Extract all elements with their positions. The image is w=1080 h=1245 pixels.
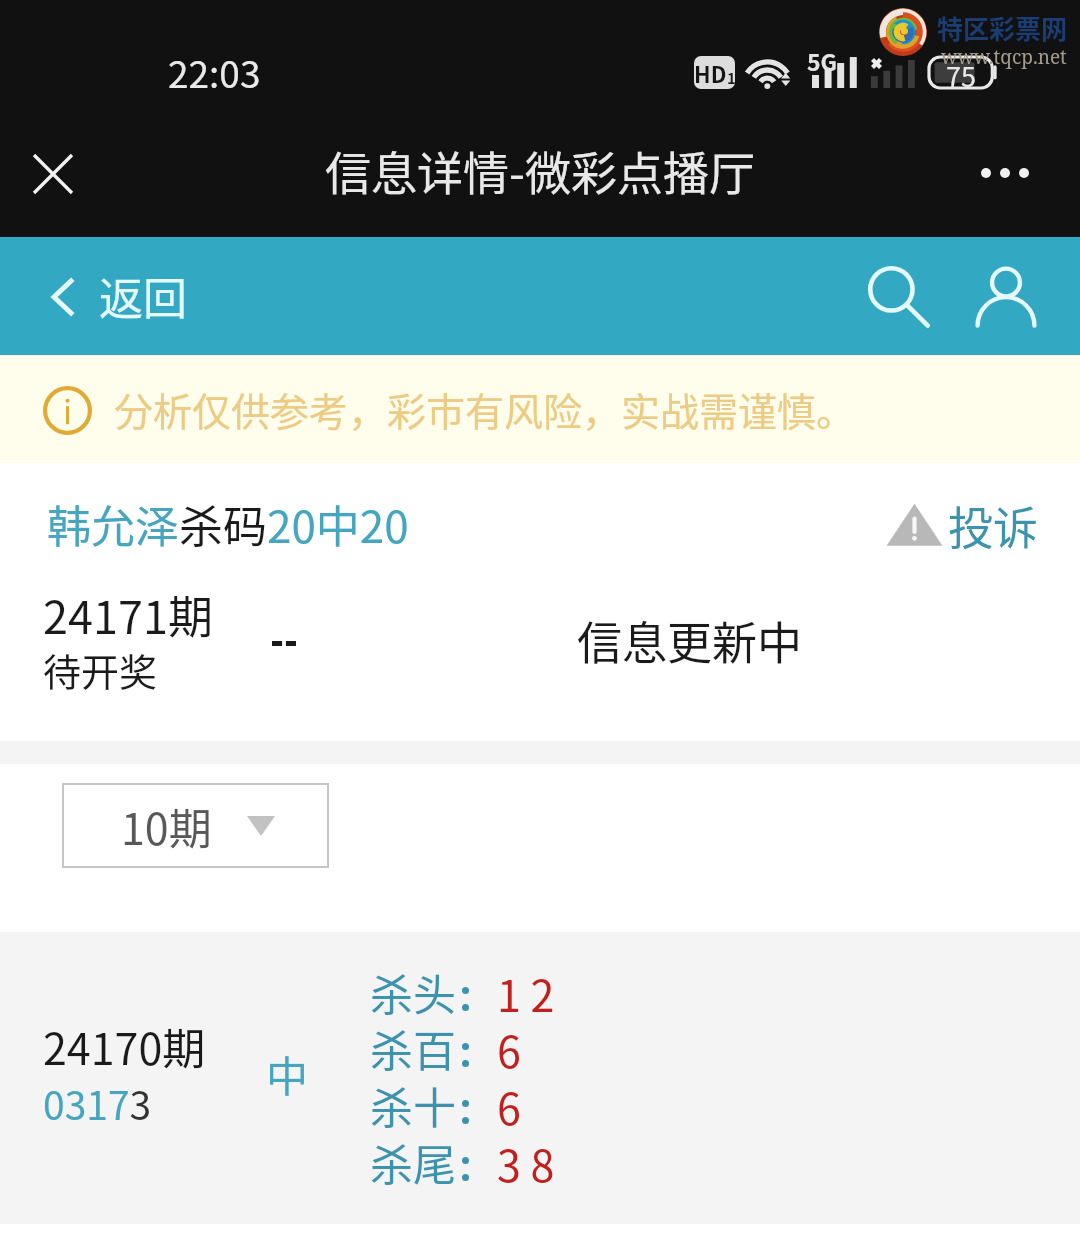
- button[interactable]: 10期: [62, 783, 329, 868]
- staticText: www.tqcp.net: [941, 44, 1067, 70]
- staticText: 22:03: [168, 45, 261, 99]
- button[interactable]: More options: [959, 138, 1051, 208]
- staticText: 3 8: [497, 1132, 555, 1194]
- staticText: 6: [497, 1075, 521, 1137]
- staticText: 75: [946, 56, 976, 87]
- button[interactable]: Account: [958, 248, 1054, 344]
- staticText: 03173: [43, 1075, 152, 1131]
- staticText: 分析仅供参考，彩市有风险，实战需谨慎。: [114, 381, 856, 437]
- staticText: 24170期: [43, 1015, 206, 1077]
- staticText: 10期: [121, 795, 212, 857]
- staticText: 返回: [99, 264, 187, 328]
- staticText: 杀十: [370, 1074, 456, 1136]
- staticText: 杀百: [370, 1017, 456, 1079]
- staticText: 杀尾: [370, 1131, 456, 1193]
- button[interactable]: 投诉: [880, 489, 1045, 561]
- staticText: 杀头: [370, 961, 456, 1023]
- staticText: 信息详情-微彩点播厅: [325, 137, 755, 204]
- staticText: 特区彩票网: [937, 9, 1068, 47]
- staticText: 1: [727, 67, 735, 89]
- button[interactable]: Close: [10, 131, 96, 217]
- button[interactable]: 返回: [0, 237, 207, 355]
- staticText: 1 2: [497, 962, 555, 1024]
- staticText: 投诉: [948, 493, 1039, 558]
- staticText: 5G: [807, 44, 838, 77]
- staticText: 24171期: [43, 582, 213, 647]
- staticText: 中: [266, 1043, 309, 1104]
- staticText: 信息更新中: [577, 608, 803, 673]
- button[interactable]: Search: [850, 248, 946, 344]
- staticText: HD: [694, 57, 727, 89]
- staticText: 待开奖: [43, 642, 158, 697]
- staticText: 韩允泽杀码20中20: [47, 492, 409, 556]
- staticText: 6: [497, 1018, 521, 1080]
